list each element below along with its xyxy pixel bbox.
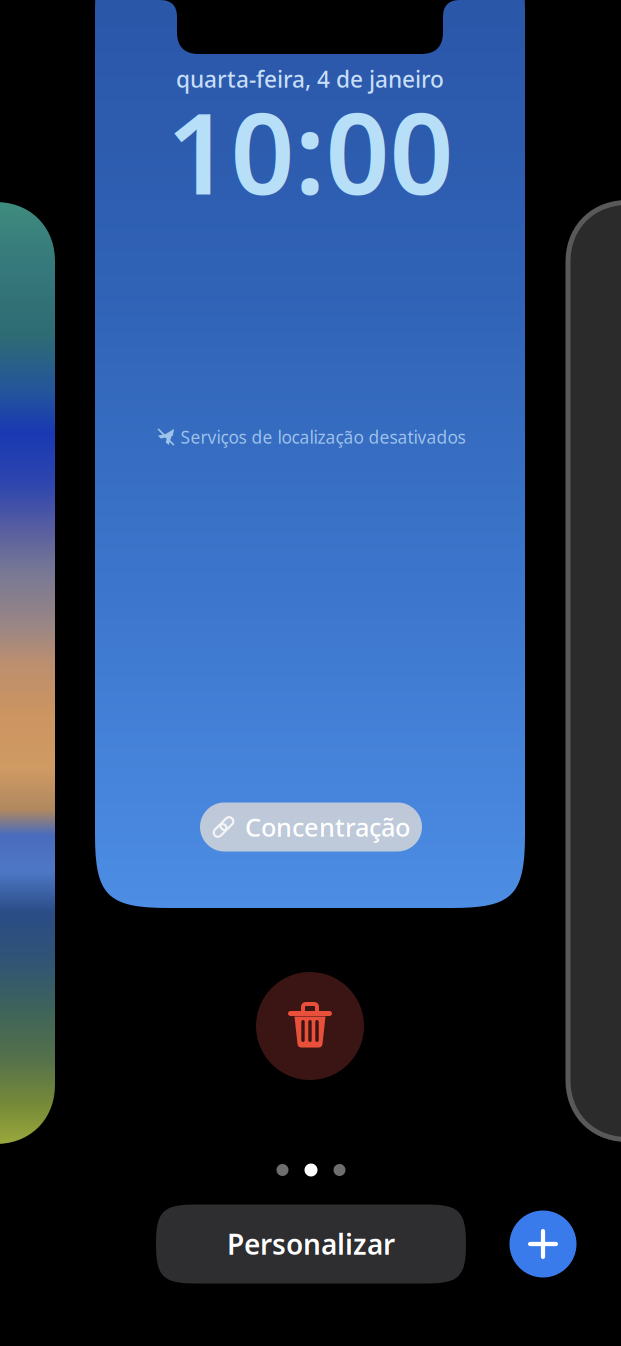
staticText: 10:00 — [166, 77, 453, 225]
button[interactable]: Apagar fundo de tela — [256, 972, 364, 1080]
staticText: quarta-feira, 4 de janeiro — [176, 64, 444, 94]
staticText: Personalizar — [227, 1225, 395, 1263]
staticText: Concentração — [245, 810, 410, 844]
staticText: Serviços de localização desativados — [180, 425, 465, 448]
button[interactable]: Personalizar — [156, 1204, 466, 1283]
button[interactable]: Adicionar fundo de tela — [509, 1210, 576, 1277]
